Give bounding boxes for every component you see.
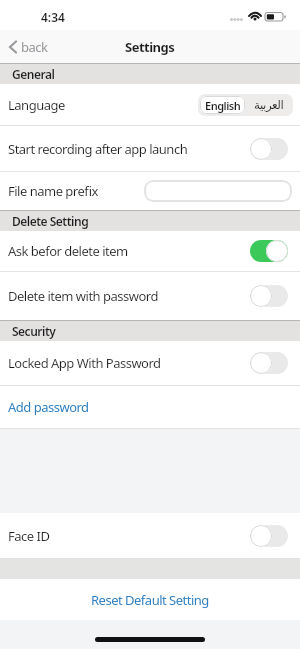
button[interactable] [250, 138, 288, 160]
button[interactable]: Start recording after app launch [0, 126, 300, 171]
button[interactable] [250, 285, 288, 307]
button[interactable] [250, 352, 288, 374]
button[interactable]: Face ID [0, 513, 300, 558]
button[interactable] [250, 525, 288, 547]
button[interactable]: Reset Default Setting [0, 579, 300, 620]
staticText: Delete Setting [12, 213, 89, 229]
staticText: Delete item with password [8, 287, 158, 305]
button[interactable]: Delete item with password [0, 272, 300, 320]
staticText: العربية [254, 98, 284, 112]
staticText: Reset Default Setting [91, 591, 209, 609]
staticText: Locked App With Password [8, 354, 161, 372]
staticText: Add password [8, 398, 89, 416]
button[interactable]: Locked App With Password [0, 341, 300, 385]
staticText: Start recording after app launch [8, 140, 188, 158]
staticText: Settings [125, 38, 175, 56]
staticText: File name prefix [8, 182, 99, 200]
button[interactable]: Language [0, 84, 300, 125]
staticText: English [205, 98, 241, 113]
button[interactable]: back [8, 38, 48, 56]
button[interactable]: English [198, 94, 293, 116]
staticText: Language [8, 96, 65, 114]
button[interactable]: Ask befor delete item [0, 231, 300, 271]
staticText: Ask befor delete item [8, 242, 128, 260]
staticText: back [21, 38, 48, 56]
staticText: Face ID [8, 527, 50, 545]
button[interactable] [144, 180, 292, 202]
button[interactable] [250, 240, 288, 262]
button[interactable]: Add password [0, 386, 300, 428]
button[interactable]: File name prefix [0, 172, 300, 210]
staticText: General [12, 66, 55, 82]
staticText: 4:34 [41, 9, 65, 25]
staticText: Security [12, 323, 56, 339]
